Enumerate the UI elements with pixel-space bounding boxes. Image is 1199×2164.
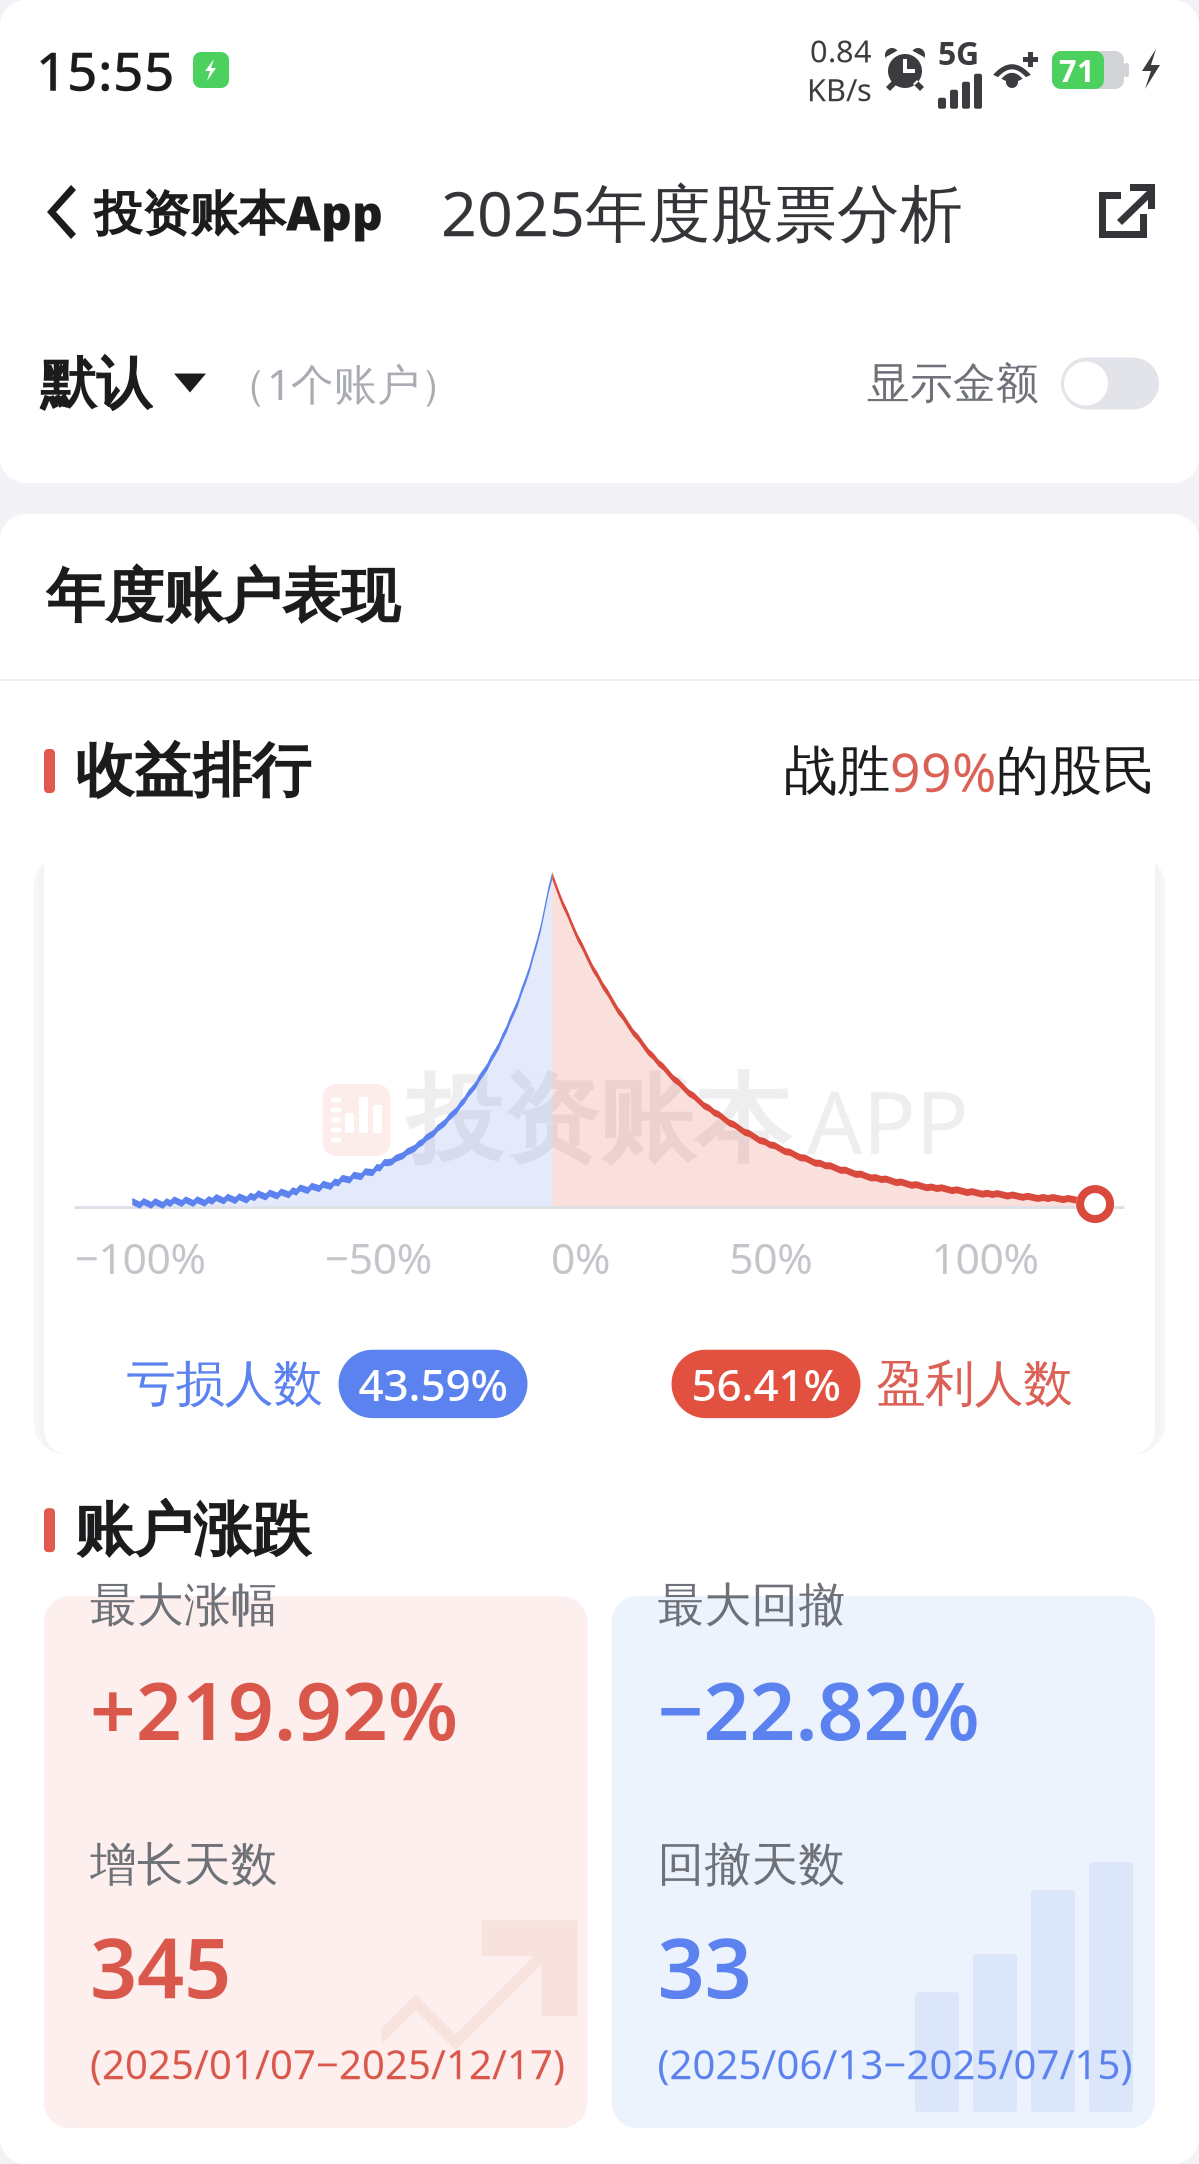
staticText: 账户涨跌 (75, 1494, 311, 1566)
staticText: (2025/06/13−2025/07/15) (657, 2037, 1132, 2090)
staticText: 默认 (40, 349, 152, 418)
staticText: 33 (657, 1911, 751, 2021)
staticText: 最大回撤 (657, 1576, 845, 1634)
button[interactable]: 默认 (40, 349, 463, 418)
staticText: 345 (90, 1911, 231, 2021)
staticText: +219.92% (90, 1656, 458, 1762)
staticText: 15:55 (36, 35, 175, 105)
staticText: 显示金额 (867, 357, 1039, 410)
staticText: 5G (938, 31, 979, 74)
staticText: 0% (551, 1229, 610, 1286)
staticText: 亏损人数 (126, 1354, 322, 1414)
button[interactable]: 显示金额 (867, 357, 1159, 410)
button[interactable]: 投资账本App (40, 180, 389, 244)
staticText: 投资账本App (94, 180, 383, 244)
staticText: （1个账户） (224, 355, 463, 412)
staticText: 50% (729, 1229, 812, 1286)
staticText: 0.84 (810, 30, 872, 71)
button[interactable]: 分享 (1095, 184, 1159, 240)
staticText: 战胜 (784, 738, 890, 804)
staticText: 99% (890, 736, 996, 806)
staticText: 的股民 (996, 738, 1155, 804)
staticText: APP (806, 1062, 968, 1178)
staticText: 回撤天数 (657, 1836, 845, 1893)
staticText: −100% (74, 1229, 205, 1286)
staticText: −50% (325, 1229, 432, 1286)
staticText: 56.41% (691, 1355, 840, 1413)
staticText: 投资账本 (406, 1061, 790, 1179)
staticText: 100% (931, 1229, 1038, 1286)
staticText: −22.82% (657, 1656, 979, 1762)
staticText: 增长天数 (90, 1836, 278, 1893)
staticText: 年度账户表现 (46, 560, 400, 633)
staticText: 2025年度股票分析 (441, 170, 963, 254)
staticText: 盈利人数 (876, 1354, 1072, 1414)
staticText: KB/s (807, 69, 872, 110)
staticText: 43.59% (358, 1355, 507, 1413)
staticText: 71 (1059, 50, 1095, 90)
staticText: 收益排行 (75, 735, 311, 807)
staticText: 最大涨幅 (90, 1576, 278, 1634)
staticText: (2025/01/07−2025/12/17) (90, 2037, 565, 2090)
